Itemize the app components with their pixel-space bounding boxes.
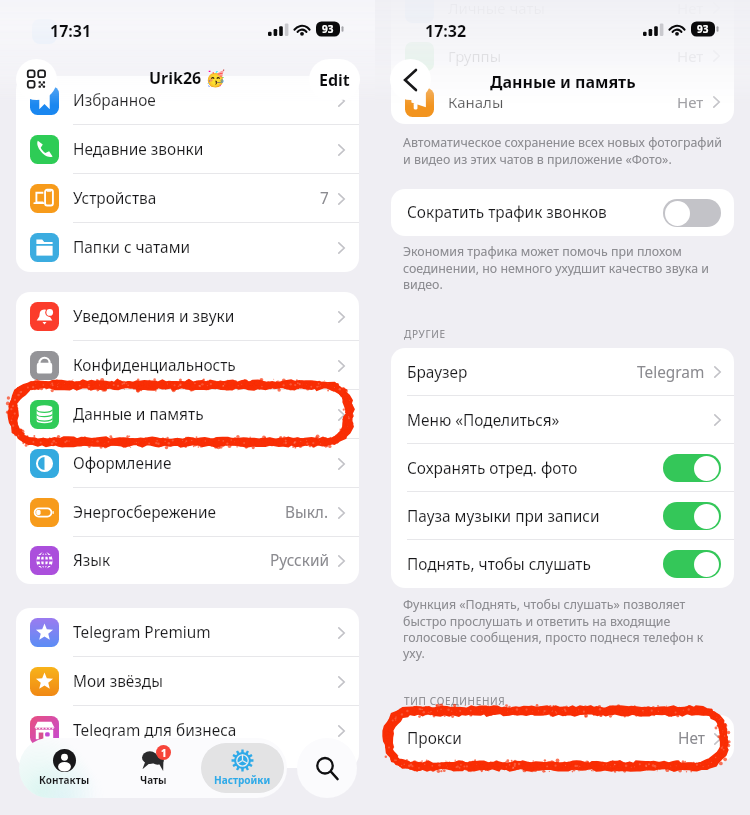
staticText: Данные и память [73,404,204,425]
staticText: Конфиденциальность [73,355,236,376]
staticText: ТИП СОЕДИНЕНИЯ [404,694,506,708]
staticText: Каналы [448,92,504,112]
button[interactable]: Сократить трафик звонков [391,189,734,236]
staticText: Оформление [73,453,172,474]
staticText: Поднять, чтобы слушать [407,554,591,575]
staticText: Telegram Premium [73,622,211,643]
staticText: Edit [319,69,350,91]
button[interactable] [663,550,721,578]
button[interactable]: Уведомления и звуки [16,292,359,341]
staticText: Нет [677,46,704,66]
button[interactable]: Недавние звонки [16,125,359,174]
staticText: 7 [320,188,329,209]
staticText: Нет [678,728,705,749]
staticText: Чаты [140,773,167,787]
staticText: Telegram [637,362,705,383]
staticText: Сократить трафик звонков [407,202,607,223]
staticText: Меню «Поделиться» [407,410,560,431]
button[interactable]: Данные и память [16,390,359,439]
button[interactable] [663,454,721,482]
staticText: Функция «Поднять, чтобы слушать» позволя… [403,596,704,662]
staticText: Выкл. [285,502,329,523]
staticText: Энергосбережение [73,502,217,523]
staticText: 93 [697,22,709,36]
button[interactable]: Папки с чатами [16,223,359,272]
button[interactable]: Search [297,738,357,798]
staticText: Telegram для бизнеса [73,720,237,741]
staticText: Urik26 🥳 [149,67,226,89]
button[interactable]: Back [390,59,431,100]
button[interactable]: Поднять, чтобы слушать [391,540,734,588]
button[interactable]: Меню «Поделиться» [391,396,734,444]
button[interactable]: Конфиденциальность [16,341,359,390]
staticText: Папки с чатами [73,237,191,258]
staticText: Пауза музыки при записи [407,506,600,527]
staticText: Язык [73,550,111,571]
staticText: ДРУГИЕ [404,327,446,341]
staticText: Экономия трафика может помочь при плохом… [403,243,709,293]
button[interactable]: QR code [16,59,57,100]
staticText: Избранное [73,90,156,111]
staticText: 93 [322,22,334,36]
staticText: Группы [448,46,502,66]
button[interactable]: Telegram Premium [16,608,359,657]
staticText: Недавние звонки [73,139,204,160]
staticText: Автоматическое сохранение всех новых фот… [403,134,722,168]
staticText: Сохранять отред. фото [407,458,578,479]
button[interactable]: Избранное [16,76,359,125]
button[interactable] [663,502,721,530]
button[interactable]: Оформление [16,439,359,488]
button[interactable]: Edit [309,59,360,100]
staticText: Данные и память [490,71,636,93]
button[interactable]: Пауза музыки при записи [391,492,734,540]
staticText: 17:31 [50,20,92,42]
staticText: Русский [270,550,329,571]
button[interactable] [663,199,721,227]
staticText: Нет [677,92,704,112]
staticText: 17:32 [425,20,467,42]
staticText: Прокси [407,728,462,749]
button[interactable]: Контакты [19,738,109,798]
button[interactable]: 1 [109,738,198,798]
staticText: 1 [161,746,167,760]
staticText: Устройства [73,188,157,209]
button[interactable]: Устройства [16,174,359,223]
button[interactable]: Настройки [201,743,284,793]
button[interactable]: Telegram для бизнеса [16,706,359,755]
button[interactable]: Энергосбережение [16,488,359,537]
button[interactable]: Сохранять отред. фото [391,444,734,492]
button[interactable]: Браузер [391,348,734,396]
staticText: Уведомления и звуки [73,306,235,327]
staticText: Настройки [214,773,271,787]
button[interactable]: Язык [16,537,359,584]
button[interactable]: Мои звёзды [16,657,359,706]
staticText: Контакты [39,773,90,787]
staticText: Мои звёзды [73,671,163,692]
button[interactable]: Прокси [391,715,734,762]
staticText: Браузер [407,362,468,383]
